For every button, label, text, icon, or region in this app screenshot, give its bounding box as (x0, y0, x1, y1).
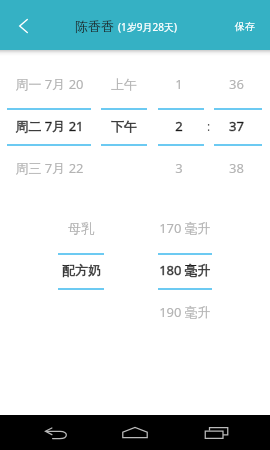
button[interactable]: 36 (212, 73, 260, 95)
staticText: 陈香香 (75, 18, 114, 34)
staticText: 37 (229, 117, 244, 135)
staticText: 下午 (111, 118, 137, 134)
button[interactable]: 周二 7月 21 (7, 115, 91, 137)
button[interactable]: 下午 (101, 115, 147, 137)
button[interactable]: Back (0, 0, 44, 50)
staticText: 36 (229, 75, 244, 93)
button[interactable]: Back (16, 415, 96, 450)
staticText: : (207, 118, 211, 134)
staticText: 配方奶 (62, 262, 101, 278)
button[interactable]: 38 (212, 157, 260, 179)
staticText: (1岁9月28天) (118, 20, 177, 34)
button[interactable]: 37 (212, 115, 260, 137)
staticText: 190 毫升 (159, 303, 211, 321)
button[interactable]: 170 毫升 (158, 217, 212, 239)
button[interactable]: Recent apps (176, 415, 256, 450)
staticText: 上午 (111, 76, 137, 92)
staticText: 周一 7月 20 (15, 75, 84, 93)
staticText: 保存 (235, 20, 255, 33)
button[interactable]: 2 (156, 115, 202, 137)
staticText: 周三 7月 22 (15, 159, 84, 177)
staticText: 170 毫升 (159, 219, 211, 237)
button[interactable]: 周一 7月 20 (7, 73, 91, 95)
staticText: 180 毫升 (159, 261, 211, 279)
staticText: 配方奶 (62, 262, 101, 278)
button[interactable]: 3 (156, 157, 202, 179)
button[interactable]: 1 (156, 73, 202, 95)
staticText: 38 (229, 159, 244, 177)
button[interactable]: 190 毫升 (158, 301, 212, 323)
button[interactable]: 保存 (221, 0, 270, 50)
staticText: 2 (175, 117, 183, 135)
staticText: 180 毫升 (159, 261, 211, 279)
staticText: 1 (175, 75, 183, 93)
button[interactable]: 180 毫升 (158, 259, 212, 281)
button[interactable]: 母乳 (58, 217, 104, 239)
button[interactable]: 上午 (101, 73, 147, 95)
button[interactable]: Home (95, 415, 175, 450)
staticText: 下午 (111, 118, 137, 134)
staticText: 周二 7月 21 (15, 117, 84, 135)
staticText: 3 (175, 159, 183, 177)
staticText: 母乳 (68, 220, 94, 236)
button[interactable]: 配方奶 (58, 259, 104, 281)
staticText: 37 (229, 117, 244, 135)
staticText: 周二 7月 21 (15, 117, 84, 135)
button[interactable]: 周三 7月 22 (7, 157, 91, 179)
staticText: 2 (175, 117, 183, 135)
